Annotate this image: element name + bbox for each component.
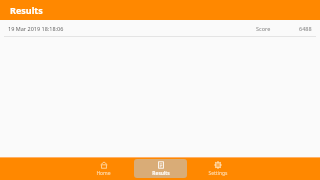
button[interactable]: 19 Mar 2019 18:18:06	[0, 20, 320, 37]
staticText: Results	[10, 4, 43, 16]
button[interactable]: Settings	[191, 159, 244, 178]
button[interactable]: Results	[134, 159, 187, 178]
staticText: 19 Mar 2019 18:18:06	[8, 25, 64, 32]
staticText: 6488	[299, 25, 312, 32]
staticText: Results	[152, 170, 170, 177]
staticText: Home	[96, 170, 111, 177]
button[interactable]: Home	[77, 159, 130, 178]
staticText: Score	[256, 25, 271, 32]
staticText: Settings	[208, 170, 228, 177]
